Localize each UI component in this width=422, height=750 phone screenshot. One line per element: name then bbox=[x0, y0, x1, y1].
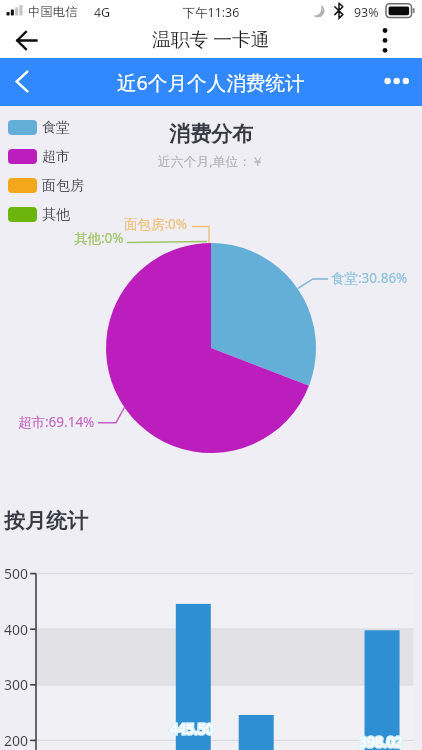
staticText: 消费分布 bbox=[169, 121, 253, 147]
staticText: 398.02 bbox=[359, 732, 403, 750]
staticText: 温职专 一卡通 bbox=[152, 26, 270, 52]
staticText: 500 bbox=[0, 564, 28, 583]
staticText: 200 bbox=[0, 731, 28, 750]
staticText: 中国电信 bbox=[28, 4, 78, 20]
staticText: 超市 bbox=[42, 148, 70, 166]
button[interactable]: 面包房 bbox=[8, 171, 84, 200]
button[interactable]: More options bbox=[368, 23, 402, 57]
staticText: 其他:0% bbox=[74, 229, 124, 247]
staticText: 面包房:0% bbox=[124, 215, 188, 233]
staticText: 93% bbox=[354, 4, 379, 21]
staticText: 其他 bbox=[42, 206, 70, 224]
staticText: 400 bbox=[0, 620, 28, 639]
staticText: 445.50 bbox=[170, 719, 214, 738]
button[interactable]: 其他 bbox=[8, 200, 70, 229]
staticText: 4G bbox=[94, 4, 111, 21]
button[interactable]: 超市 bbox=[8, 142, 70, 171]
staticText: 445.50 bbox=[170, 719, 214, 738]
button[interactable]: More bbox=[376, 61, 416, 101]
staticText: 398.02 bbox=[359, 732, 403, 750]
staticText: 超市:69.14% bbox=[18, 413, 95, 431]
button[interactable]: Back bbox=[2, 61, 42, 101]
staticText: 近6个月个人消费统计 bbox=[117, 69, 305, 96]
staticText: 食堂:30.86% bbox=[331, 269, 408, 287]
staticText: 下午11:36 bbox=[0, 4, 422, 21]
button[interactable]: 食堂 bbox=[8, 113, 70, 142]
staticText: 300 bbox=[0, 675, 28, 694]
staticText: 面包房 bbox=[42, 177, 84, 195]
staticText: 食堂 bbox=[42, 119, 70, 137]
staticText: 近六个月,单位：￥ bbox=[158, 152, 264, 169]
button[interactable]: Back bbox=[8, 22, 44, 58]
staticText: 按月统计 bbox=[4, 508, 88, 534]
